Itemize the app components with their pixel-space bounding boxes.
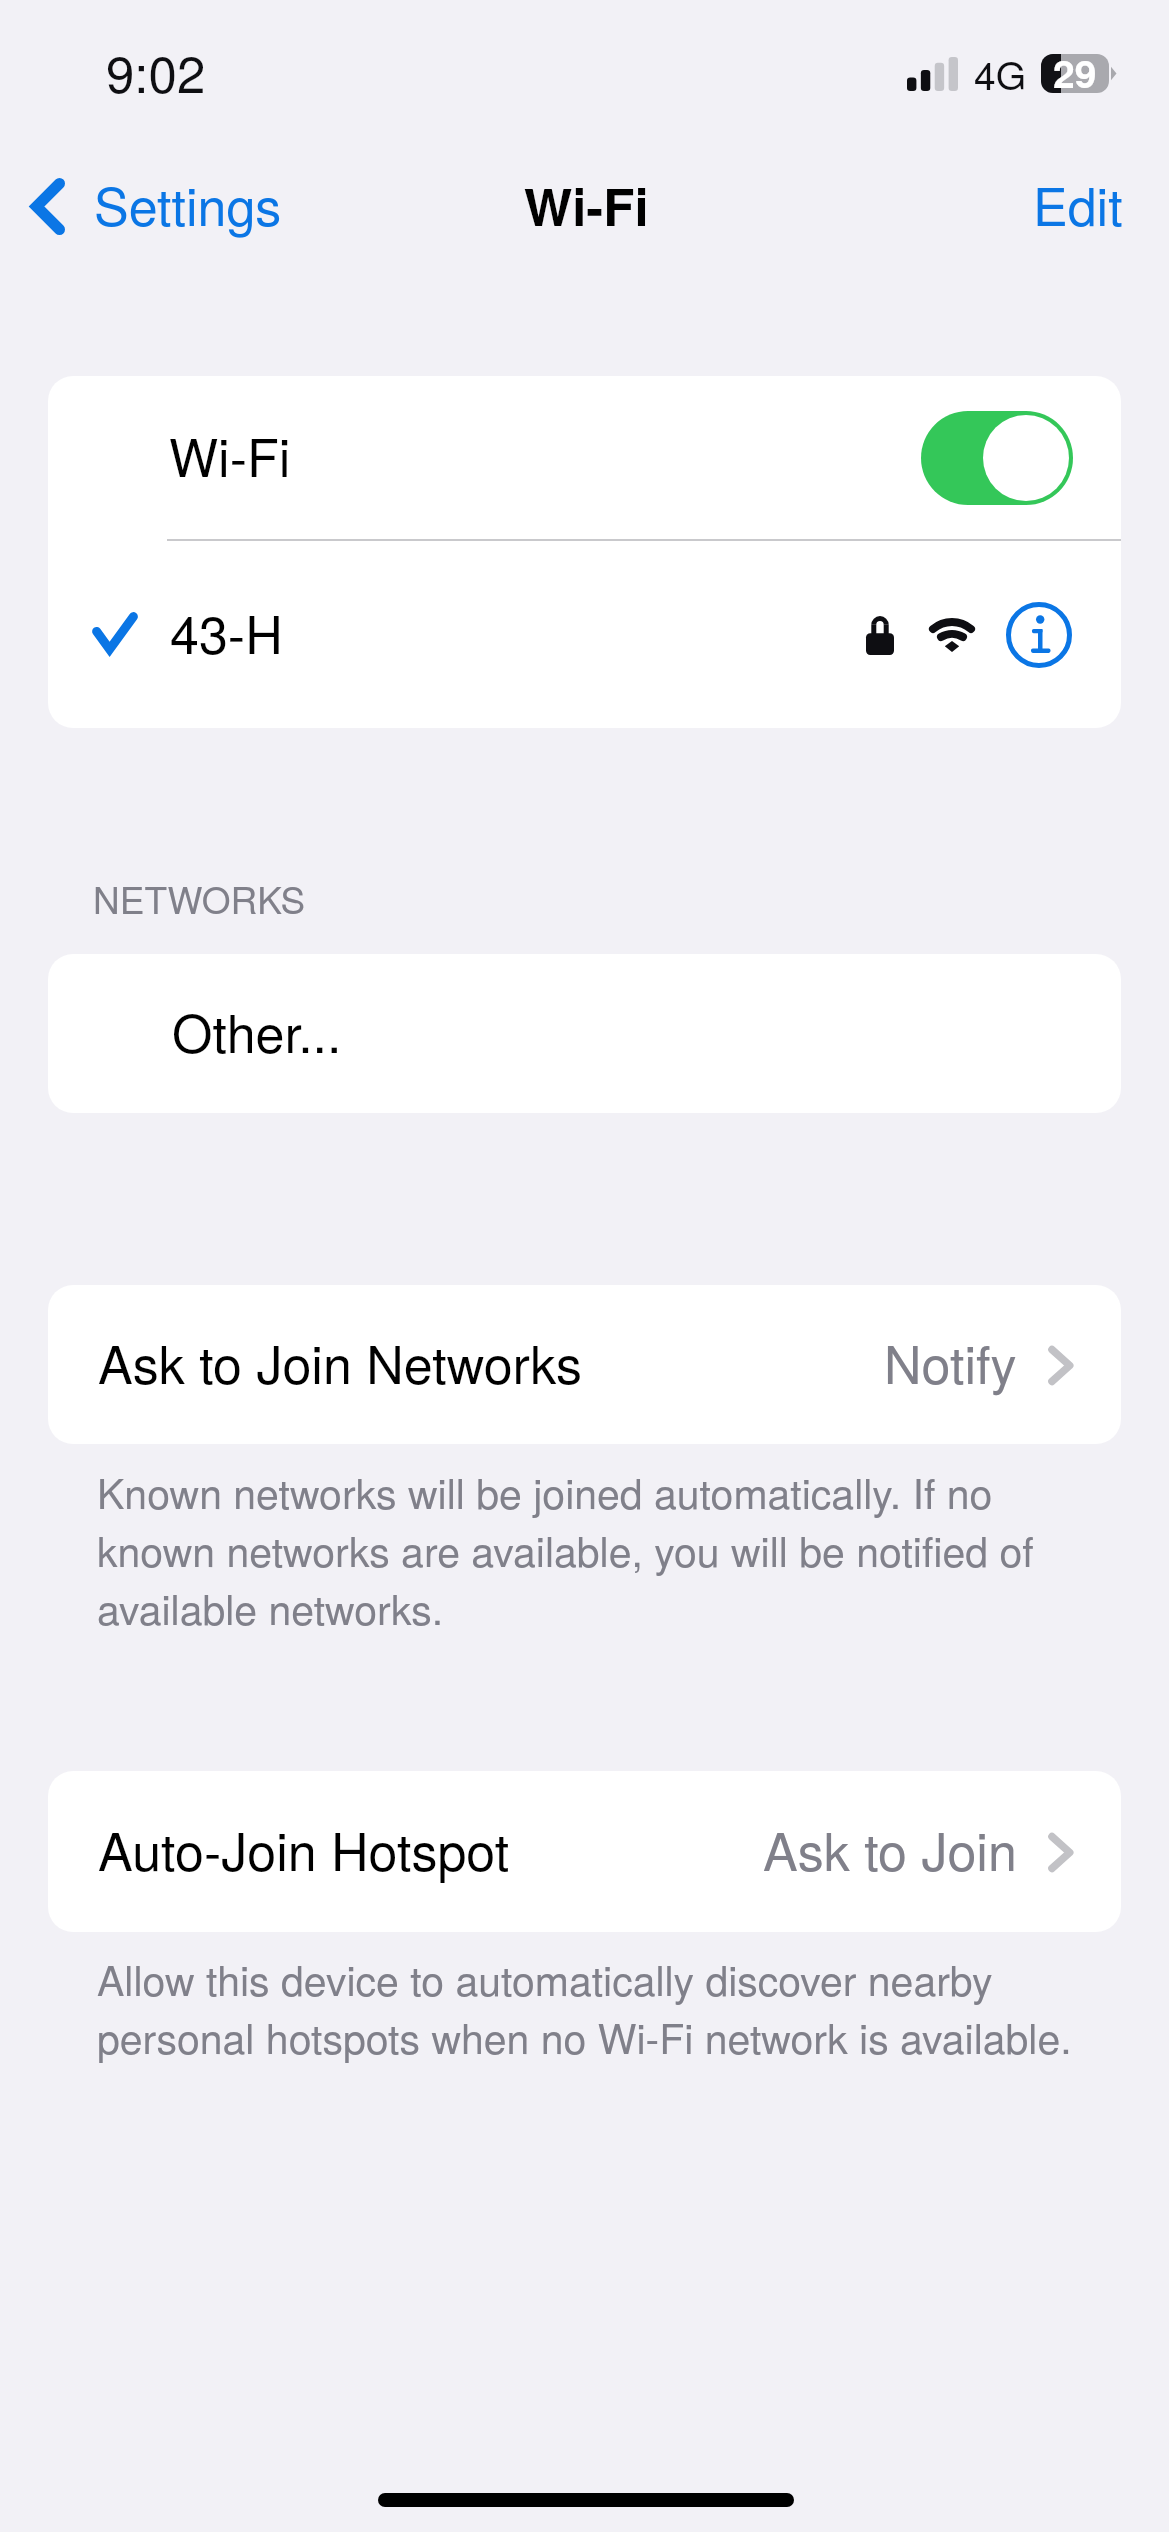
staticText: Settings — [94, 166, 282, 240]
staticText: Known networks will be joined automatica… — [97, 1462, 1097, 1637]
staticText: Allow this device to automatically disco… — [97, 1949, 1097, 2066]
staticText: 9:02 — [106, 34, 206, 107]
staticText: Ask to Join — [763, 1811, 1017, 1885]
button[interactable]: Network info — [1006, 602, 1072, 668]
staticText: 29 — [1053, 44, 1097, 100]
button[interactable]: 43-H — [48, 541, 1121, 728]
button[interactable]: Wi-Fi on — [921, 411, 1073, 505]
staticText: Wi-Fi — [524, 169, 649, 242]
button[interactable]: Back to Settings — [16, 161, 304, 251]
staticText: 43-H — [170, 594, 283, 668]
button[interactable]: Other... — [48, 954, 1121, 1113]
staticText: Other... — [172, 993, 342, 1067]
button[interactable]: Wi-Fi — [48, 376, 1121, 539]
staticText: Edit — [1033, 166, 1123, 240]
staticText: 4G — [974, 45, 1027, 101]
staticText: Wi-Fi — [169, 417, 291, 491]
staticText: Notify — [884, 1324, 1017, 1398]
staticText: Ask to Join Networks — [98, 1324, 582, 1398]
button[interactable]: Auto-Join Hotspot — [48, 1771, 1121, 1932]
staticText: NETWORKS — [93, 872, 306, 925]
button[interactable]: Edit — [998, 161, 1136, 251]
staticText: Auto-Join Hotspot — [98, 1811, 510, 1885]
button[interactable]: Ask to Join Networks — [48, 1285, 1121, 1444]
